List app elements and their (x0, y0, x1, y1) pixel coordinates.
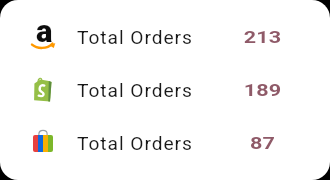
other: Amazon total orders (0, 25, 77, 49)
other: Google total orders (0, 133, 77, 154)
staticText: 189 (243, 80, 282, 100)
staticText: Total Orders (77, 132, 193, 155)
staticText: a (36, 13, 53, 49)
staticText: 87 (249, 133, 275, 153)
staticText: Total Orders (77, 79, 193, 102)
button[interactable]: Shopify total orders (0, 78, 330, 102)
other: Shopify total orders (0, 78, 77, 102)
button[interactable]: Google total orders (0, 131, 330, 155)
staticText: Total Orders (77, 26, 193, 49)
button[interactable]: Amazon total orders (0, 25, 330, 49)
staticText: 213 (243, 27, 282, 47)
